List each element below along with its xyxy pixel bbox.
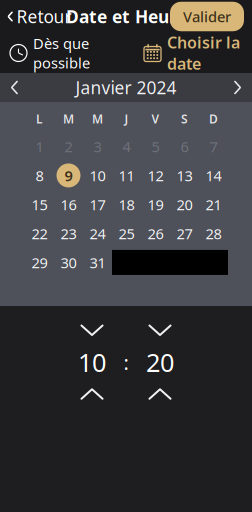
button[interactable]: 12: [141, 163, 170, 188]
button[interactable]: 30: [54, 250, 83, 275]
staticText: 20: [146, 345, 174, 379]
staticText: S: [181, 111, 188, 127]
button[interactable]: 28: [199, 221, 228, 246]
button[interactable]: 29: [25, 250, 54, 275]
staticText: 19: [147, 195, 163, 214]
button[interactable]: 10: [83, 163, 112, 188]
button[interactable]: 3: [83, 134, 112, 159]
button[interactable]: 9: [54, 163, 83, 188]
button[interactable]: 16: [54, 192, 83, 217]
button[interactable]: Valider: [170, 2, 244, 31]
staticText: 2: [64, 137, 72, 156]
button[interactable]: 13: [170, 163, 199, 188]
button[interactable]: 6: [170, 134, 199, 159]
staticText: Choisir la date: [167, 32, 240, 74]
staticText: 23: [60, 224, 76, 243]
button[interactable]: 20: [170, 192, 199, 217]
button[interactable]: Mois précédent: [0, 74, 29, 101]
staticText: D: [209, 111, 218, 127]
staticText: Date et Heure: [66, 5, 186, 28]
button[interactable]: 17: [83, 192, 112, 217]
button[interactable]: 26: [141, 221, 170, 246]
button[interactable]: 31: [83, 250, 112, 275]
staticText: 12: [147, 166, 163, 185]
staticText: 24: [89, 224, 105, 243]
staticText: L: [36, 111, 43, 127]
button[interactable]: 7: [199, 134, 228, 159]
button[interactable]: Diminuer les minutes: [143, 382, 177, 406]
button[interactable]: Diminuer les heures: [75, 382, 109, 406]
staticText: 21: [205, 195, 221, 214]
button[interactable]: 18: [112, 192, 141, 217]
staticText: 27: [176, 224, 192, 243]
staticText: :: [123, 349, 128, 375]
button[interactable]: 21: [199, 192, 228, 217]
button[interactable]: 1: [25, 134, 54, 159]
staticText: J: [124, 111, 128, 127]
staticText: 10: [78, 345, 106, 379]
staticText: 7: [209, 137, 217, 156]
staticText: 13: [176, 166, 192, 185]
staticText: 9: [64, 166, 72, 185]
button[interactable]: Mois suivant: [223, 74, 252, 101]
button[interactable]: 14: [199, 163, 228, 188]
staticText: 30: [60, 253, 76, 272]
button[interactable]: 22: [25, 221, 54, 246]
staticText: 4: [122, 137, 130, 156]
staticText: 25: [118, 224, 134, 243]
staticText: Valider: [183, 7, 231, 26]
staticText: 3: [93, 137, 101, 156]
staticText: M: [63, 111, 74, 127]
staticText: Dès que possible: [33, 33, 90, 72]
staticText: M: [92, 111, 103, 127]
button[interactable]: 5: [141, 134, 170, 159]
staticText: 1: [35, 137, 43, 156]
staticText: 5: [151, 137, 159, 156]
button[interactable]: 27: [170, 221, 199, 246]
staticText: 6: [180, 137, 188, 156]
staticText: 18: [118, 195, 134, 214]
button[interactable]: Retour: [0, 0, 79, 34]
staticText: 28: [205, 224, 221, 243]
button[interactable]: 4: [112, 134, 141, 159]
button[interactable]: 15: [25, 192, 54, 217]
button[interactable]: 25: [112, 221, 141, 246]
button[interactable]: Choisir la date: [144, 24, 240, 82]
staticText: 15: [31, 195, 47, 214]
staticText: 29: [31, 253, 47, 272]
staticText: 17: [89, 195, 105, 214]
button[interactable]: 11: [112, 163, 141, 188]
button[interactable]: Augmenter les heures: [75, 318, 109, 342]
staticText: V: [151, 111, 159, 127]
button[interactable]: Dès que possible: [10, 25, 90, 80]
staticText: 14: [205, 166, 221, 185]
button[interactable]: Augmenter les minutes: [143, 318, 177, 342]
button[interactable]: 19: [141, 192, 170, 217]
button[interactable]: 2: [54, 134, 83, 159]
staticText: 22: [31, 224, 47, 243]
staticText: Janvier 2024: [75, 76, 176, 99]
staticText: 20: [176, 195, 192, 214]
staticText: 8: [35, 166, 43, 185]
staticText: 26: [147, 224, 163, 243]
button[interactable]: 8: [25, 163, 54, 188]
button[interactable]: 23: [54, 221, 83, 246]
staticText: Retour: [17, 5, 72, 28]
staticText: 10: [89, 166, 105, 185]
staticText: 16: [60, 195, 76, 214]
staticText: 31: [89, 253, 105, 272]
staticText: 11: [118, 166, 134, 185]
button[interactable]: 24: [83, 221, 112, 246]
